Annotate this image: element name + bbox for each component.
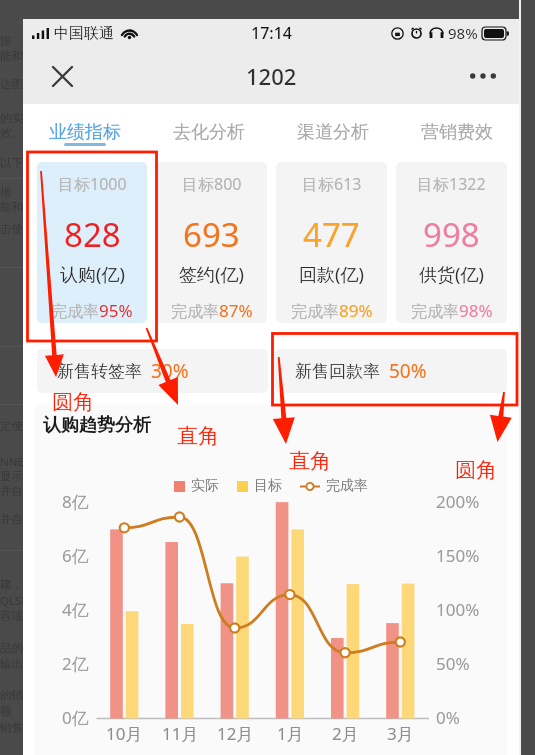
staticText: 完成率 xyxy=(291,302,339,322)
staticText: 据 xyxy=(0,185,12,199)
staticText: 定使 xyxy=(0,419,23,433)
button[interactable]: 目标1322 xyxy=(396,162,507,323)
staticText: 显示 xyxy=(0,469,23,483)
staticText: 直角 xyxy=(289,448,331,474)
staticText: 1月 xyxy=(277,722,304,744)
staticText: 998 xyxy=(423,212,480,257)
staticText: 17:14 xyxy=(251,22,292,44)
staticText: 认购(亿) xyxy=(60,262,125,287)
staticText: 828 xyxy=(64,212,121,257)
staticText: 0亿 xyxy=(62,706,89,728)
staticText: 营销费效 xyxy=(421,121,493,144)
staticText: 2亿 xyxy=(62,652,89,674)
staticText: 100% xyxy=(436,598,480,620)
staticText: 10月 xyxy=(106,722,143,744)
button[interactable]: 目标800 xyxy=(156,162,267,323)
staticText: 目标1322 xyxy=(417,173,486,195)
staticText: 完成率 xyxy=(51,302,99,322)
staticText: 50% xyxy=(389,358,427,384)
button[interactable]: 目标613 xyxy=(276,162,387,323)
staticText: 2月 xyxy=(332,722,359,744)
staticText: 输出 xyxy=(0,657,23,671)
staticText: 200% xyxy=(436,490,480,512)
staticText: 据 xyxy=(0,34,12,48)
button[interactable]: 新售回款率 xyxy=(275,349,507,393)
button[interactable]: 渠道分析 xyxy=(271,104,395,162)
staticText: 回款(亿) xyxy=(299,262,364,287)
staticText: 直角 xyxy=(177,423,219,449)
staticText: 150% xyxy=(436,544,480,566)
staticText: 的销售 xyxy=(0,688,35,702)
button[interactable]: Close xyxy=(40,54,84,98)
staticText: 圆角 xyxy=(52,389,94,415)
button[interactable]: More options xyxy=(461,54,505,98)
staticText: 98% xyxy=(459,299,493,322)
staticText: 完成率 xyxy=(326,477,368,495)
staticText: 的实 xyxy=(0,111,23,125)
staticText: NNER xyxy=(0,454,32,470)
button[interactable]: 新售转签率 xyxy=(37,349,268,393)
staticText: 477 xyxy=(303,212,360,257)
staticText: 目标1000 xyxy=(58,173,127,195)
staticText: 11月 xyxy=(162,722,199,744)
staticText: 签约(亿) xyxy=(179,262,244,287)
staticText: 以下 xyxy=(0,156,23,170)
staticText: QLSE xyxy=(0,593,28,609)
staticText: 业绩指标 xyxy=(49,121,121,144)
staticText: 建， xyxy=(0,577,23,591)
staticText: 能和 xyxy=(0,200,23,214)
staticText: 8亿 xyxy=(62,490,89,512)
staticText: 87% xyxy=(219,299,253,322)
button[interactable]: 去化分析 xyxy=(147,104,271,162)
staticText: 6亿 xyxy=(62,544,89,566)
button[interactable]: 业绩指标 xyxy=(23,104,147,162)
staticText: 30% xyxy=(151,358,189,384)
staticText: 并自 xyxy=(0,512,23,526)
staticText: 完成率 xyxy=(411,302,459,322)
staticText: 完成率 xyxy=(171,302,219,322)
staticText: 95% xyxy=(99,299,133,322)
staticText: 50% xyxy=(436,652,470,674)
staticText: 目标800 xyxy=(182,173,242,195)
staticText: 12月 xyxy=(217,722,254,744)
staticText: 渠道分析 xyxy=(297,121,369,144)
staticText: 3月 xyxy=(387,722,414,744)
staticText: 新售回款率 xyxy=(295,361,380,382)
staticText: 销售 xyxy=(0,721,23,735)
staticText: 圆角 xyxy=(455,457,497,483)
staticText: 供货(亿) xyxy=(419,262,484,287)
staticText: 1202 xyxy=(246,61,297,91)
staticText: 效、 xyxy=(0,126,23,140)
staticText: 去化分析 xyxy=(173,121,245,144)
button[interactable]: 营销费效 xyxy=(395,104,519,162)
staticText: 693 xyxy=(183,212,240,257)
button[interactable]: 目标1000 xyxy=(37,162,147,323)
staticText: 实际 xyxy=(191,477,219,495)
staticText: 98% xyxy=(448,23,478,43)
staticText: 击使 xyxy=(0,222,23,236)
staticText: 目标613 xyxy=(302,173,362,195)
staticText: 并自 xyxy=(0,484,23,498)
staticText: 目标 xyxy=(254,477,282,495)
staticText: 容请 xyxy=(0,609,23,623)
staticText: 品的销 xyxy=(0,641,35,655)
staticText: 0% xyxy=(436,706,460,728)
staticText: 能和 xyxy=(0,49,23,63)
staticText: 额 xyxy=(0,704,12,718)
staticText: 中国联通 xyxy=(54,24,114,43)
staticText: 新售转签率 xyxy=(57,361,142,382)
staticText: 达图. xyxy=(0,76,27,92)
staticText: 4亿 xyxy=(62,598,89,620)
staticText: 89% xyxy=(339,299,373,322)
staticText: 认购趋势分析 xyxy=(43,414,151,437)
